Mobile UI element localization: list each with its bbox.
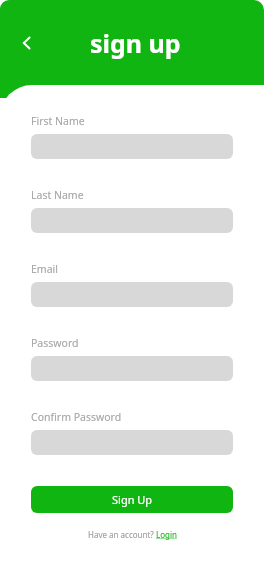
button[interactable]: Back — [10, 26, 44, 60]
staticText: Password — [31, 336, 79, 350]
staticText: sign up — [90, 26, 181, 60]
staticText: Have an account? — [88, 529, 156, 540]
staticText: First Name — [31, 114, 85, 128]
button[interactable]: Login — [156, 529, 177, 540]
staticText: Email — [31, 262, 58, 276]
staticText: Login — [156, 529, 177, 540]
staticText: Sign Up — [112, 492, 153, 507]
staticText: Last Name — [31, 188, 84, 202]
button[interactable]: Sign Up — [31, 486, 233, 513]
staticText: Confirm Password — [31, 410, 122, 424]
